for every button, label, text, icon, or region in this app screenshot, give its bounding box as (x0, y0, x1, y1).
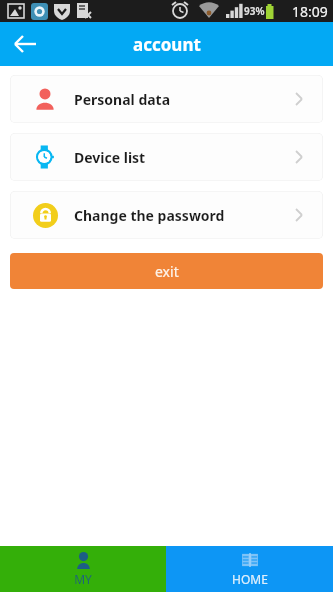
staticText: Change the password (74, 206, 225, 225)
button[interactable]: HOME (166, 546, 333, 592)
staticText: exit (155, 262, 179, 281)
button[interactable]: exit (10, 253, 323, 289)
staticText: account (133, 33, 201, 56)
button[interactable]: Change the password (10, 191, 323, 239)
button[interactable]: MY (0, 546, 166, 592)
staticText: 18:09 (292, 2, 328, 21)
button[interactable]: Back (6, 25, 44, 63)
staticText: MY (74, 571, 92, 587)
button[interactable]: Device list (10, 133, 323, 181)
staticText: Device list (74, 148, 146, 167)
staticText: HOME (232, 571, 268, 587)
button[interactable]: Personal data (10, 75, 323, 123)
staticText: Personal data (74, 90, 171, 109)
staticText: 93% (244, 4, 265, 18)
